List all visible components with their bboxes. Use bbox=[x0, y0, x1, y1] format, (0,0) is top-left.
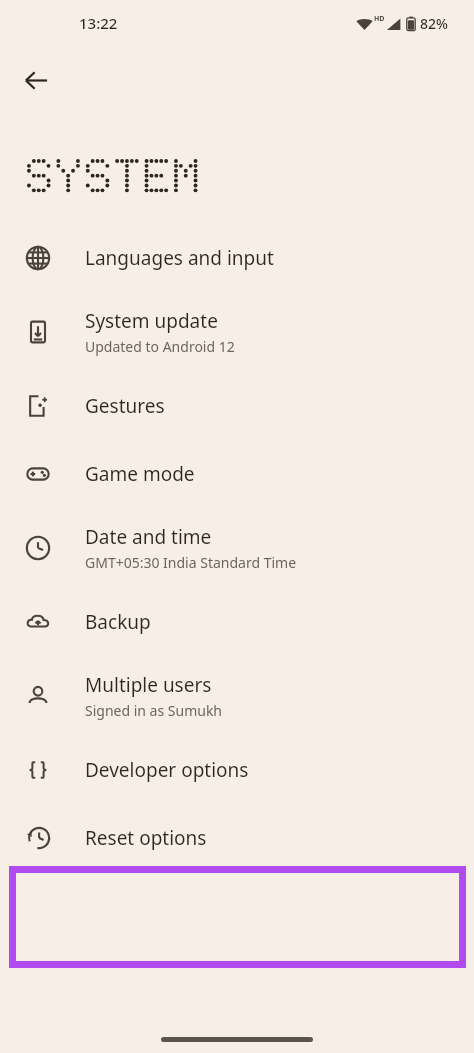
staticText: Updated to Android 12 bbox=[85, 337, 235, 356]
button[interactable]: Gestures bbox=[0, 372, 474, 440]
button[interactable]: Backup bbox=[0, 588, 474, 656]
staticText: Game mode bbox=[85, 461, 195, 487]
button[interactable]: Multiple users bbox=[0, 656, 474, 736]
staticText: Gestures bbox=[85, 393, 165, 419]
staticText: Developer options bbox=[85, 757, 249, 783]
staticText: Date and time bbox=[85, 524, 212, 550]
staticText: Reset options bbox=[85, 825, 207, 851]
staticText: System update bbox=[85, 308, 218, 334]
staticText: 13:22 bbox=[79, 13, 118, 33]
button[interactable]: System update bbox=[0, 292, 474, 372]
staticText: 82% bbox=[420, 14, 448, 33]
staticText: Backup bbox=[85, 609, 151, 635]
button[interactable]: Reset options bbox=[0, 804, 474, 872]
staticText: HD bbox=[374, 14, 385, 24]
button[interactable]: Back bbox=[14, 58, 58, 102]
button[interactable]: Date and time bbox=[0, 508, 474, 588]
staticText: Languages and input bbox=[85, 245, 274, 271]
staticText: GMT+05:30 India Standard Time bbox=[85, 553, 297, 572]
staticText: Multiple users bbox=[85, 672, 212, 698]
button[interactable]: Game mode bbox=[0, 440, 474, 508]
staticText: Signed in as Sumukh bbox=[85, 701, 223, 720]
button[interactable]: Languages and input bbox=[0, 224, 474, 292]
button[interactable]: Developer options bbox=[0, 736, 474, 804]
